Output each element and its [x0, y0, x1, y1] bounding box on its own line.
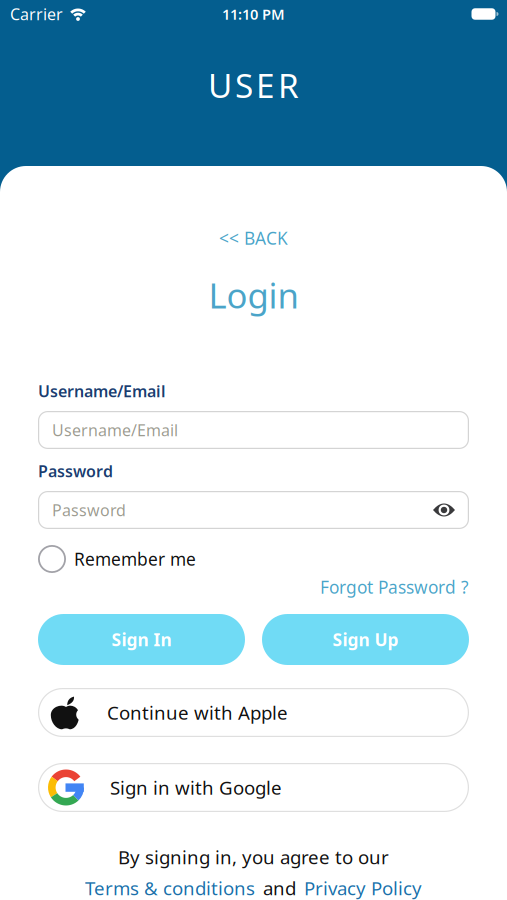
staticText: Carrier [10, 3, 63, 25]
staticText: Login [208, 272, 298, 318]
button[interactable]: Continue with Apple [38, 688, 469, 737]
staticText: Forgot Password ? [320, 575, 469, 598]
staticText: Terms & conditions [85, 876, 255, 900]
button[interactable]: Sign Up [262, 614, 469, 665]
staticText: Sign Up [332, 628, 398, 651]
button[interactable]: Privacy Policy [304, 876, 422, 900]
button[interactable]: Remember me [38, 545, 196, 573]
staticText: Password [52, 499, 126, 521]
button[interactable]: Forgot Password ? [320, 575, 469, 598]
staticText: Password [38, 460, 113, 482]
staticText: Privacy Policy [304, 876, 422, 900]
staticText: Username/Email [38, 380, 166, 402]
staticText: By signing in, you agree to our [118, 845, 389, 869]
staticText: and [263, 876, 296, 900]
staticText: Sign in with Google [110, 775, 282, 800]
staticText: 11:10 PM [222, 4, 285, 24]
staticText: Username/Email [52, 419, 178, 441]
button[interactable]: << BACK [219, 226, 288, 249]
textField[interactable]: Username/Email [52, 419, 455, 441]
staticText: Continue with Apple [107, 700, 288, 725]
staticText: Sign In [111, 628, 171, 651]
staticText: U S E R [208, 63, 299, 107]
button[interactable]: Sign in with Google [38, 763, 469, 812]
textField[interactable]: Password [52, 499, 427, 521]
button[interactable]: Sign In [38, 614, 245, 665]
button[interactable]: Terms & conditions [85, 876, 255, 900]
staticText: Remember me [74, 547, 196, 570]
button[interactable]: Show password [433, 502, 455, 517]
staticText: << BACK [219, 226, 288, 249]
